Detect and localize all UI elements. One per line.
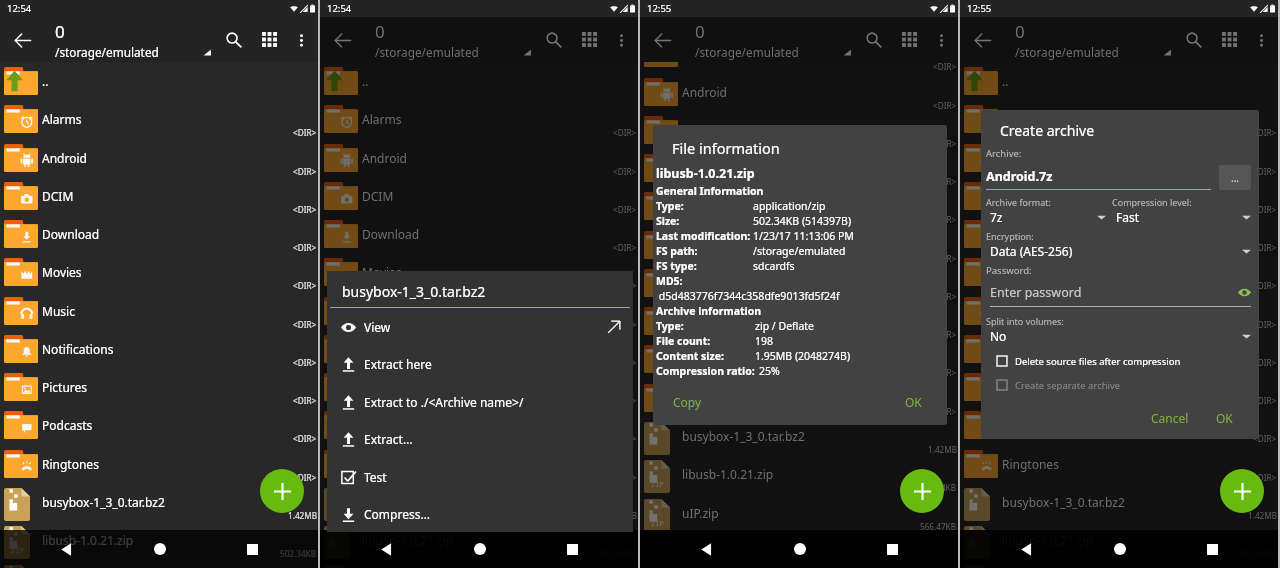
button[interactable]: Cancel [1151, 410, 1189, 426]
button[interactable]: Pictures [960, 368, 1280, 406]
button[interactable]: Notifications [0, 330, 320, 368]
button[interactable]: More options [287, 26, 315, 54]
button[interactable]: View [327, 311, 633, 348]
button[interactable]: Download [960, 215, 1280, 253]
button[interactable]: Podcasts [960, 406, 1280, 444]
button[interactable]: Download [640, 149, 960, 187]
button[interactable]: Grid view [892, 22, 927, 57]
button[interactable]: Movies [640, 187, 960, 225]
button[interactable]: Search [855, 21, 892, 58]
button[interactable]: OK [1216, 410, 1233, 426]
button[interactable]: Back [1011, 534, 1041, 564]
button[interactable]: ... [1219, 165, 1251, 190]
button[interactable]: Back [691, 534, 721, 564]
button[interactable]: ZIP [960, 560, 1280, 568]
button[interactable]: .. [0, 62, 320, 100]
button[interactable]: Ringtones [960, 445, 1280, 483]
button[interactable]: .. [320, 62, 640, 100]
button[interactable]: busybox-1_3_0.tar.bz2 [960, 483, 1280, 521]
button[interactable]: Notifications [960, 330, 1280, 368]
button[interactable]: Android [960, 139, 1280, 177]
button[interactable]: Alarms [320, 100, 640, 138]
button[interactable]: Podcasts [0, 406, 320, 444]
button[interactable]: Movies [320, 253, 640, 291]
button[interactable]: ZIP [960, 521, 1280, 559]
button[interactable]: busybox-1_3_0.tar.bz2 [320, 483, 640, 521]
button[interactable]: Add [900, 469, 944, 513]
button[interactable]: ZIP [320, 560, 640, 568]
button[interactable]: Podcasts [320, 406, 640, 444]
button[interactable]: Delete source files after compression [986, 349, 1251, 373]
button[interactable]: Ringtones [320, 445, 640, 483]
button[interactable]: Music [0, 292, 320, 330]
button[interactable]: Grid view [252, 22, 287, 57]
button[interactable]: Download [0, 215, 320, 253]
button[interactable]: More options [607, 26, 635, 54]
button[interactable]: Compress… [327, 498, 633, 535]
button[interactable]: Music [320, 292, 640, 330]
button[interactable]: Extract to ./<Archive name>/ [327, 386, 633, 423]
button[interactable]: Back [967, 25, 997, 55]
button[interactable]: Podcasts [640, 340, 960, 378]
button[interactable]: Home [1105, 534, 1135, 564]
button[interactable]: 7z [986, 209, 1106, 225]
button[interactable]: ZIP [640, 494, 960, 532]
button[interactable]: Movies [0, 253, 320, 291]
button[interactable]: Back [327, 25, 357, 55]
button[interactable]: Recents [557, 534, 587, 564]
button[interactable]: Android [640, 73, 960, 111]
button[interactable]: Recents [237, 534, 267, 564]
button[interactable]: Alarms [0, 100, 320, 138]
button[interactable]: DCIM [640, 111, 960, 149]
button[interactable]: Ringtones [640, 379, 960, 417]
button[interactable]: Pictures [0, 368, 320, 406]
button[interactable]: DCIM [960, 177, 1280, 215]
button[interactable]: Home [785, 534, 815, 564]
button[interactable]: Search [215, 21, 252, 58]
button[interactable]: Ringtones [0, 445, 320, 483]
button[interactable]: Copy [673, 394, 702, 410]
button[interactable]: DCIM [320, 177, 640, 215]
button[interactable]: Create separate archive [986, 373, 1251, 397]
button[interactable]: Grid view [1212, 22, 1247, 57]
button[interactable]: Download [320, 215, 640, 253]
button[interactable]: Add [1220, 469, 1264, 513]
button[interactable]: Back [371, 534, 401, 564]
button[interactable]: ZIP [0, 521, 320, 559]
button[interactable]: ZIP [640, 455, 960, 493]
button[interactable]: Extract here [327, 348, 633, 385]
button[interactable]: Notifications [320, 330, 640, 368]
button[interactable]: Extract… [327, 423, 633, 460]
button[interactable]: More options [1247, 26, 1275, 54]
button[interactable]: Home [145, 534, 175, 564]
button[interactable]: .. [960, 62, 1280, 100]
button[interactable]: Data (AES-256) [986, 243, 1251, 259]
button[interactable]: Fast [1112, 209, 1251, 225]
button[interactable]: Search [535, 21, 572, 58]
button[interactable]: Grid view [572, 22, 607, 57]
button[interactable]: No [986, 328, 1251, 344]
button[interactable]: Music [640, 226, 960, 264]
button[interactable]: ZIP [0, 560, 320, 568]
button[interactable]: Music [960, 292, 1280, 330]
button[interactable]: Android [320, 139, 640, 177]
button[interactable]: DCIM [0, 177, 320, 215]
button[interactable]: Recents [1197, 534, 1227, 564]
button[interactable]: busybox-1_3_0.tar.bz2 [640, 417, 960, 455]
button[interactable]: Alarms [960, 100, 1280, 138]
button[interactable]: Back [7, 25, 37, 55]
button[interactable]: Pictures [320, 368, 640, 406]
button[interactable]: Test [327, 461, 633, 498]
button[interactable]: Alarms [640, 62, 960, 72]
button[interactable]: Back [51, 534, 81, 564]
button[interactable]: Add [260, 469, 304, 513]
button[interactable]: OK [905, 394, 922, 410]
button[interactable]: Search [1175, 21, 1212, 58]
button[interactable]: Notifications [640, 264, 960, 302]
button[interactable]: ZIP [320, 521, 640, 559]
button[interactable]: Pictures [640, 302, 960, 340]
button[interactable]: Back [647, 25, 677, 55]
button[interactable]: busybox-1_3_0.tar.bz2 [0, 483, 320, 521]
button[interactable]: Movies [960, 253, 1280, 291]
button[interactable]: Recents [877, 534, 907, 564]
